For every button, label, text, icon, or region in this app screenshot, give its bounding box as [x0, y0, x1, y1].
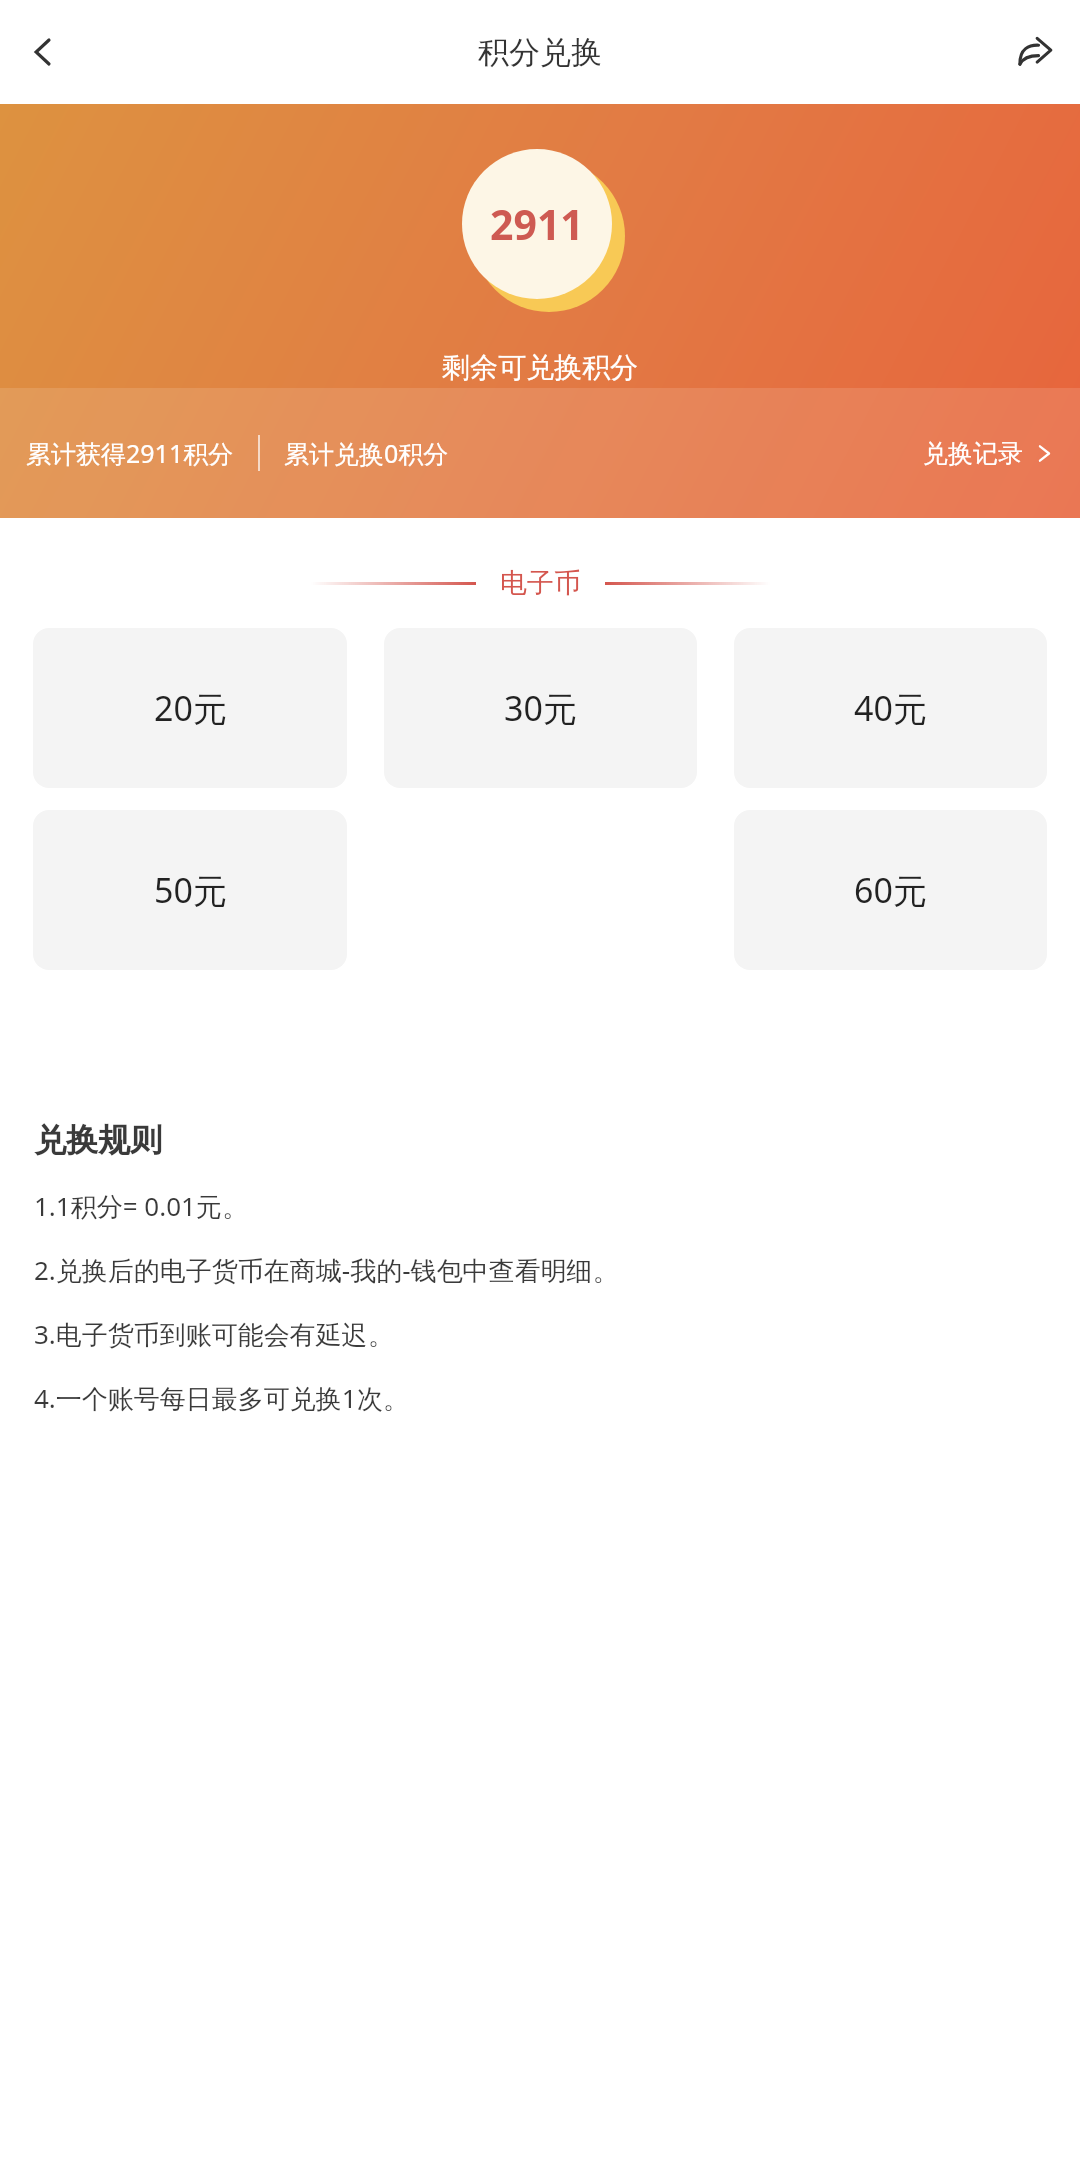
button[interactable]: 兑换记录 — [923, 428, 1054, 479]
button[interactable]: 30元 — [384, 628, 697, 788]
staticText: 剩余可兑换积分 — [442, 350, 638, 385]
button[interactable]: 60元 — [734, 810, 1047, 970]
staticText: 1.1积分= 0.01元。 — [34, 1188, 248, 1224]
button[interactable]: 40元 — [734, 628, 1047, 788]
staticText: 20元 — [154, 685, 227, 731]
staticText: 3.电子货币到账可能会有延迟。 — [34, 1316, 394, 1352]
staticText: 2.兑换后的电子货币在商城-我的-钱包中查看明细。 — [34, 1252, 619, 1288]
staticText: 兑换规则 — [34, 1120, 162, 1160]
staticText: 2911 — [490, 196, 584, 252]
button[interactable]: Back — [8, 17, 78, 87]
staticText: 50元 — [154, 867, 227, 913]
staticText: 兑换记录 — [923, 438, 1023, 469]
button[interactable]: 20元 — [33, 628, 347, 788]
staticText: 累计获得2911积分 — [26, 436, 234, 470]
staticText: 累计兑换0积分 — [284, 436, 449, 470]
staticText: 30元 — [504, 685, 577, 731]
staticText: 电子币 — [500, 566, 581, 600]
staticText: 40元 — [854, 685, 927, 731]
button[interactable]: Share — [1000, 17, 1070, 87]
staticText: 积分兑换 — [478, 33, 602, 72]
staticText: 60元 — [854, 867, 927, 913]
staticText: 4.一个账号每日最多可兑换1次。 — [34, 1380, 409, 1416]
button[interactable]: 50元 — [33, 810, 347, 970]
